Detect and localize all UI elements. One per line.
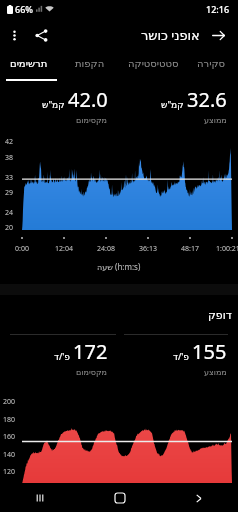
- button[interactable]: הקפות: [58, 52, 122, 82]
- staticText: 38: [5, 153, 14, 163]
- button[interactable]: More options: [1, 22, 28, 49]
- staticText: 160: [3, 432, 16, 442]
- staticText: 1:00:21: [216, 244, 238, 254]
- staticText: פ'/ד: [173, 350, 189, 362]
- button[interactable]: Back: [205, 22, 232, 49]
- staticText: 0:00: [15, 244, 29, 254]
- staticText: 42: [5, 137, 14, 147]
- staticText: ממוצע: [204, 368, 227, 377]
- staticText: שעה (h:m:s): [97, 261, 141, 272]
- staticText: 24:08: [97, 244, 115, 254]
- staticText: 66%: [15, 3, 33, 15]
- staticText: 172: [73, 338, 108, 365]
- staticText: תרשימים: [10, 58, 48, 70]
- staticText: 140: [3, 450, 16, 460]
- staticText: דופק: [208, 309, 232, 322]
- button[interactable]: קמ"ש: [108, 84, 227, 120]
- button[interactable]: סטטיסטיקה: [122, 52, 184, 82]
- button[interactable]: פ'/ד: [108, 336, 227, 372]
- staticText: 33: [5, 173, 14, 183]
- staticText: קמ"ש: [161, 98, 184, 110]
- staticText: 29: [5, 188, 14, 198]
- staticText: 36:13: [139, 244, 157, 254]
- staticText: 24: [5, 208, 14, 218]
- staticText: פ'/ד: [54, 350, 70, 362]
- button[interactable]: Home: [80, 484, 159, 512]
- button[interactable]: סקירה: [184, 52, 238, 82]
- staticText: 42.0: [68, 86, 108, 113]
- button[interactable]: Recents: [0, 484, 80, 512]
- staticText: 12:16: [206, 3, 230, 15]
- staticText: סטטיסטיקה: [128, 58, 179, 70]
- staticText: 12:04: [55, 244, 73, 254]
- staticText: 120: [3, 467, 16, 477]
- button[interactable]: קמ"ש: [0, 84, 108, 120]
- staticText: מקסימום: [76, 368, 108, 377]
- staticText: אופני כושר: [141, 26, 200, 44]
- button[interactable]: Back: [159, 484, 238, 512]
- staticText: ממוצע: [204, 116, 227, 125]
- staticText: סקירה: [197, 58, 225, 70]
- staticText: 155: [192, 338, 227, 365]
- staticText: קמ"ש: [42, 98, 65, 110]
- button[interactable]: תרשימים: [0, 52, 58, 82]
- staticText: הקפות: [75, 58, 105, 70]
- staticText: 48:17: [181, 244, 199, 254]
- staticText: 180: [3, 415, 16, 425]
- button[interactable]: פ'/ד: [0, 336, 108, 372]
- staticText: 20: [5, 223, 14, 233]
- staticText: 32.6: [187, 86, 227, 113]
- staticText: 200: [3, 397, 16, 407]
- staticText: מקסימום: [76, 116, 108, 125]
- button[interactable]: Share: [28, 22, 55, 49]
